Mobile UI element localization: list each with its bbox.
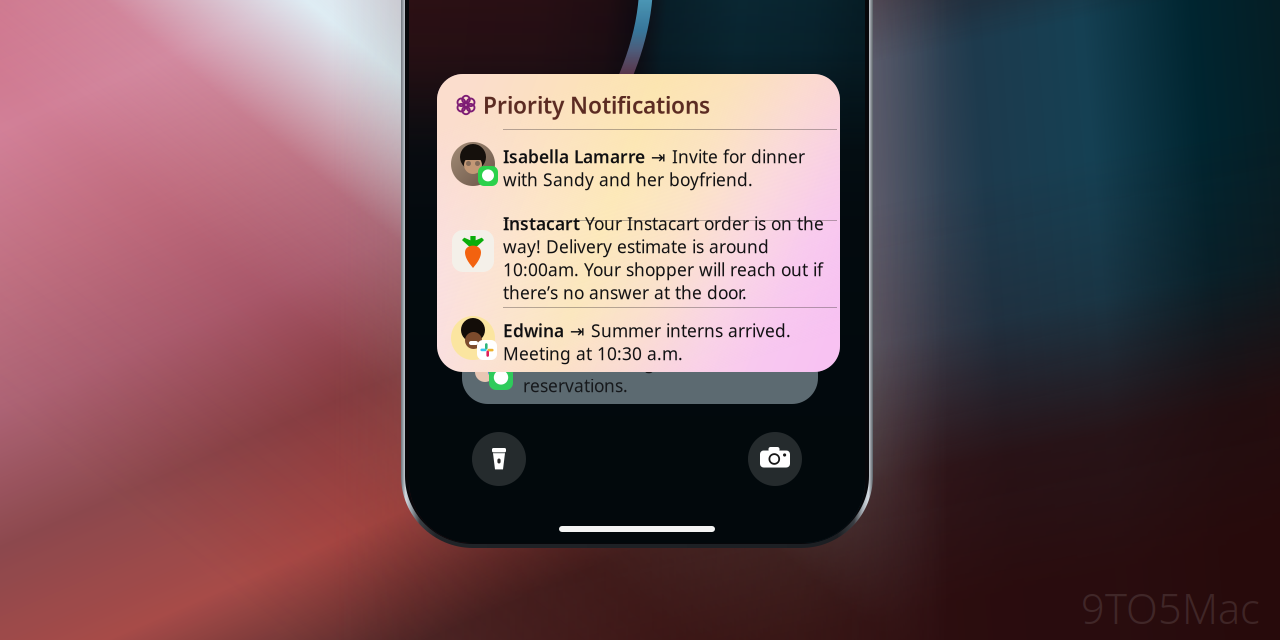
staticText: Edwina ⇥ Summer interns arrived. Meeting… [503, 319, 791, 365]
staticText: before finalizing restaurant reservation… [523, 351, 746, 397]
staticText: Priority Notifications [483, 90, 710, 120]
staticText: 9TO5Mac [1081, 581, 1260, 635]
staticText: Instacart Your Instacart order is on the… [503, 212, 824, 304]
button[interactable]: Flashlight [472, 432, 526, 486]
button[interactable]: Camera [748, 432, 802, 486]
staticText: Isabella Lamarre ⇥ Invite for dinner wit… [503, 145, 805, 191]
